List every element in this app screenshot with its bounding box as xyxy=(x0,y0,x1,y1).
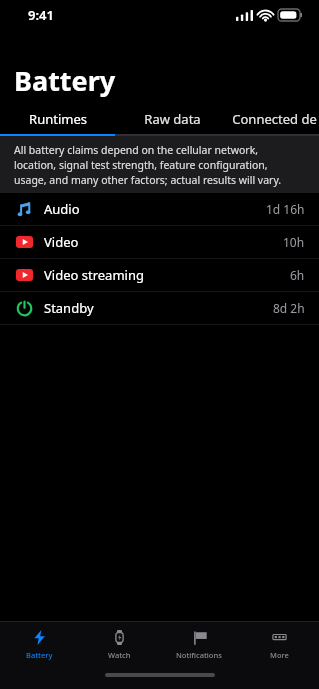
staticText: Watch xyxy=(108,650,131,660)
staticText: 8d 2h xyxy=(273,300,305,316)
button[interactable]: Battery xyxy=(0,622,79,666)
button[interactable]: Video xyxy=(0,226,319,258)
button[interactable]: More xyxy=(239,622,319,666)
staticText: All battery claims depend on the cellula… xyxy=(14,143,299,187)
button[interactable]: Audio xyxy=(0,193,319,225)
other: More xyxy=(272,630,287,645)
staticText: Video streaming xyxy=(44,266,144,284)
staticText: Video xyxy=(44,233,79,251)
staticText: 9:41 xyxy=(28,6,54,24)
staticText: 10h xyxy=(283,234,305,250)
staticText: Connected de xyxy=(232,110,317,128)
staticText: Raw data xyxy=(144,110,201,128)
staticText: Battery xyxy=(26,650,53,660)
staticText: Battery xyxy=(14,62,116,99)
button[interactable]: Connected de xyxy=(230,107,319,131)
staticText: More xyxy=(270,650,289,660)
button[interactable]: Runtimes xyxy=(0,107,115,131)
staticText: 1d 16h xyxy=(266,201,305,217)
button[interactable]: Standby xyxy=(0,292,319,324)
other: Watch xyxy=(112,630,127,645)
button[interactable]: Raw data xyxy=(115,107,230,131)
staticText: Audio xyxy=(44,200,80,218)
staticText: Standby xyxy=(44,299,94,317)
button[interactable]: Video streaming xyxy=(0,259,319,291)
other: Notifications xyxy=(192,630,208,646)
staticText: Runtimes xyxy=(29,110,87,128)
staticText: Notifications xyxy=(176,650,222,660)
staticText: 6h xyxy=(290,267,305,283)
other: Battery xyxy=(32,630,47,645)
button[interactable]: Watch xyxy=(79,622,159,666)
button[interactable]: Notifications xyxy=(159,622,239,666)
